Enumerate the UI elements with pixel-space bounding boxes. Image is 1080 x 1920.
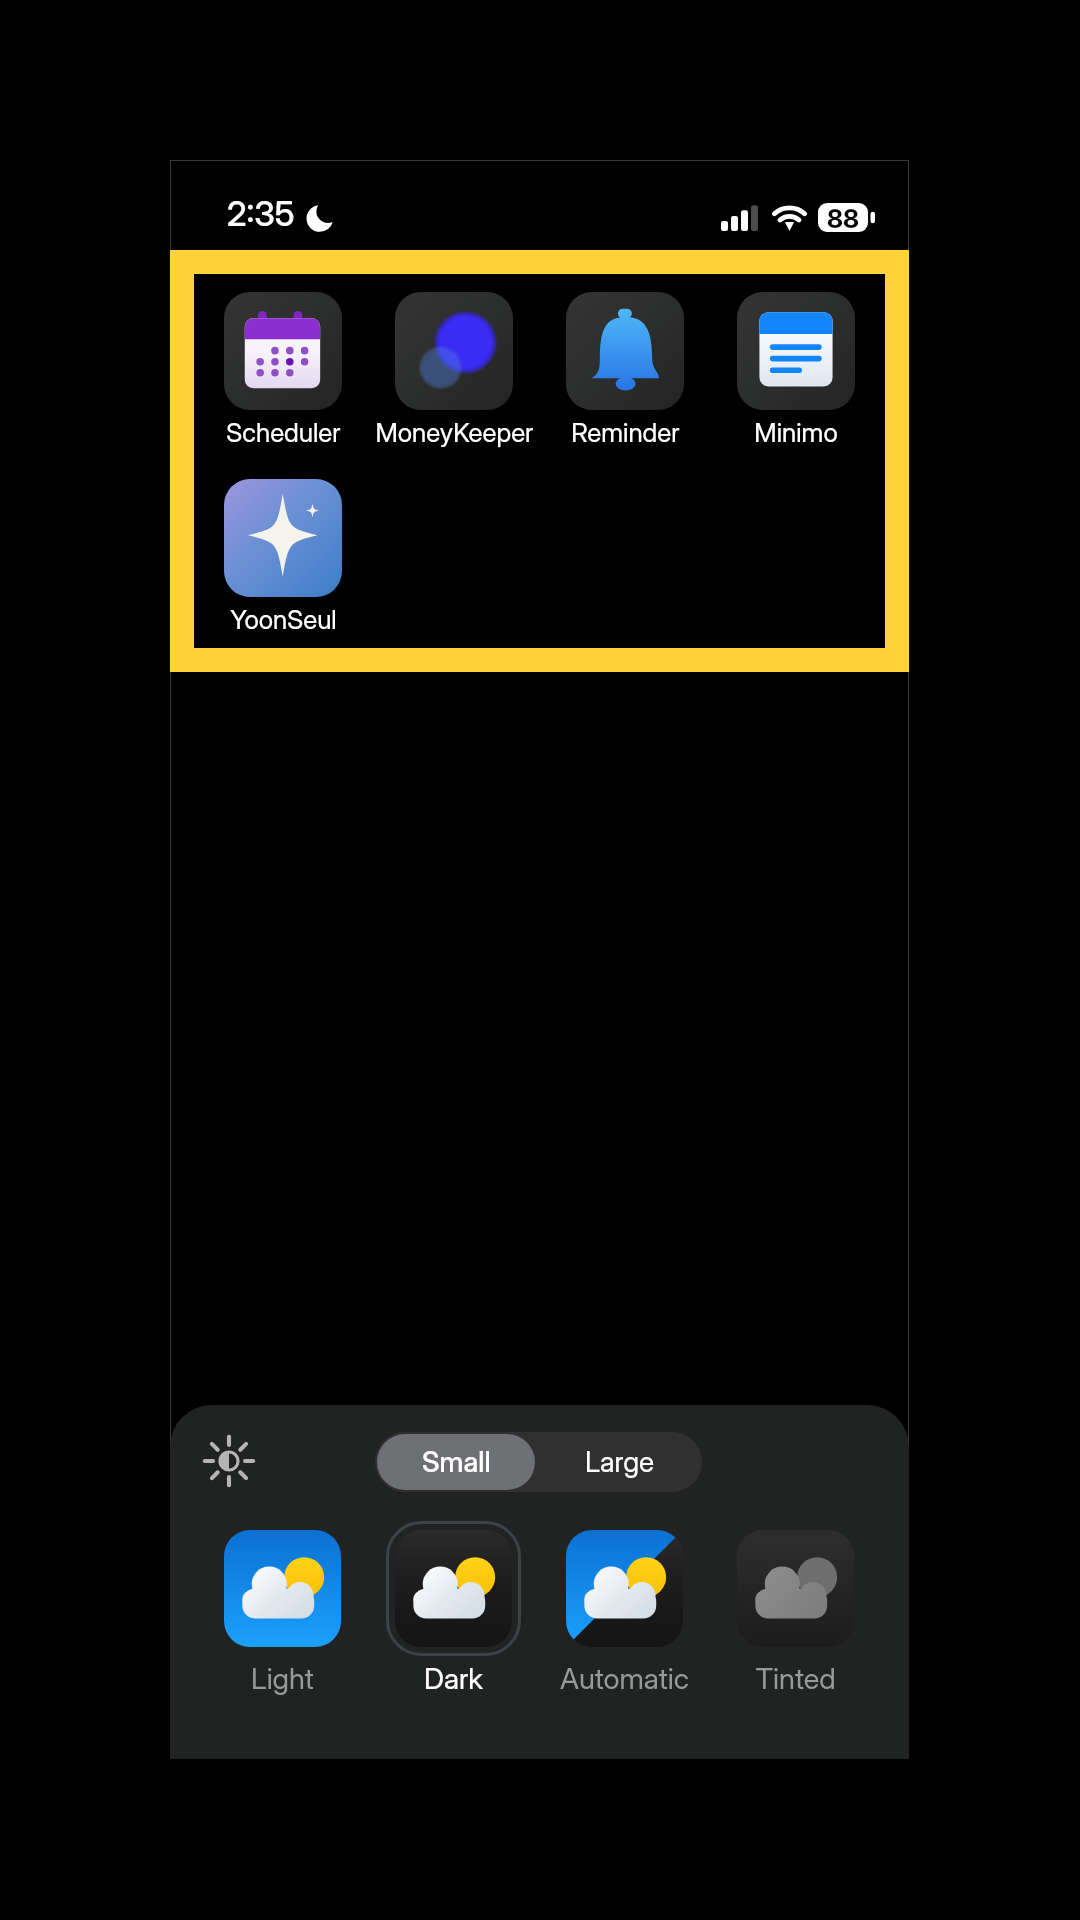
- staticText: YoonSeul: [230, 604, 337, 635]
- button[interactable]: Reminder: [546, 292, 704, 458]
- staticText: Scheduler: [226, 417, 341, 448]
- button[interactable]: Dark: [365, 1515, 542, 1695]
- button[interactable]: Large: [540, 1434, 700, 1490]
- staticText: Reminder: [571, 417, 680, 448]
- staticText: Large: [585, 1445, 655, 1479]
- staticText: Light: [251, 1661, 314, 1696]
- button[interactable]: Scheduler: [204, 292, 362, 458]
- button[interactable]: Small: [377, 1434, 535, 1490]
- staticText: Small: [422, 1445, 491, 1479]
- staticText: Automatic: [560, 1661, 689, 1696]
- button[interactable]: Minimo: [717, 292, 875, 458]
- staticText: Dark: [424, 1661, 483, 1696]
- button[interactable]: Automatic: [536, 1515, 713, 1695]
- staticText: MoneyKeeper: [375, 417, 533, 448]
- button[interactable]: YoonSeul: [204, 479, 362, 645]
- staticText: 88: [827, 203, 859, 232]
- staticText: Minimo: [754, 417, 838, 448]
- button[interactable]: MoneyKeeper: [375, 292, 533, 458]
- button[interactable]: Brightness: [197, 1429, 261, 1493]
- staticText: 2:35: [227, 193, 295, 234]
- staticText: Tinted: [755, 1661, 836, 1696]
- button[interactable]: Light: [194, 1515, 371, 1695]
- button[interactable]: Tinted: [707, 1515, 884, 1695]
